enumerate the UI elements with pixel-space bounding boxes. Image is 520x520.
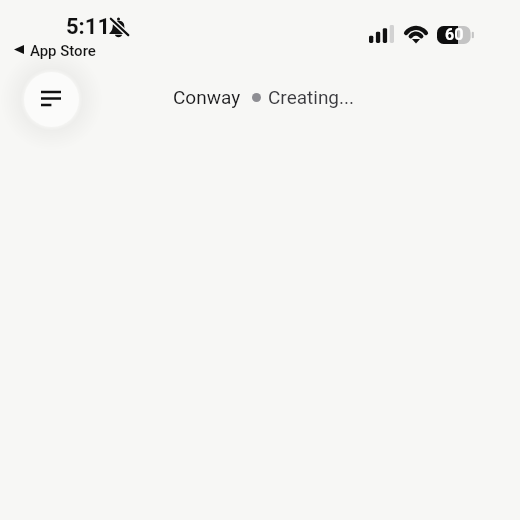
staticText: Conway xyxy=(173,86,241,108)
button[interactable]: App Store xyxy=(13,41,98,61)
staticText: App Store xyxy=(30,42,96,60)
staticText: 60 xyxy=(445,25,464,43)
button[interactable]: Menu xyxy=(24,72,79,127)
staticText: Creating... xyxy=(268,86,355,108)
button[interactable]: Conway xyxy=(173,86,355,108)
staticText: 5:11 xyxy=(66,14,111,40)
